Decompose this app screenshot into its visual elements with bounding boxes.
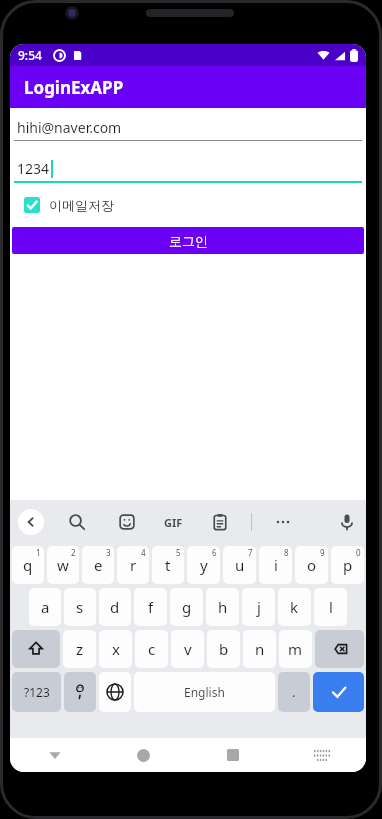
staticText: n	[255, 639, 265, 659]
staticText: 3	[106, 547, 111, 558]
button[interactable]: Shift	[12, 630, 60, 668]
staticText: hihi@naver.com	[17, 118, 122, 137]
button[interactable]: 로그인	[12, 227, 364, 254]
button[interactable]: Back	[18, 509, 44, 535]
button[interactable]: j	[242, 588, 275, 626]
staticText: a	[41, 597, 50, 617]
staticText: b	[219, 639, 229, 659]
button[interactable]: k	[278, 588, 311, 626]
button[interactable]: Voice input	[336, 511, 358, 533]
button[interactable]: d	[99, 588, 131, 626]
button[interactable]: Recent apps	[188, 738, 277, 772]
button[interactable]: hihi@naver.com	[14, 114, 362, 141]
staticText: 7	[248, 547, 253, 558]
staticText: v	[184, 639, 192, 659]
button[interactable]: i	[259, 546, 292, 584]
button[interactable]: p	[331, 546, 364, 584]
staticText: f	[148, 597, 154, 617]
button[interactable]: 이메일저장	[24, 197, 366, 213]
button[interactable]: z	[63, 630, 96, 668]
staticText: m	[288, 639, 303, 659]
button[interactable]: Enter	[313, 672, 364, 712]
button[interactable]: m	[279, 630, 312, 668]
staticText: 9	[320, 547, 325, 558]
button[interactable]: Search	[66, 511, 88, 533]
button[interactable]: ?123	[12, 672, 61, 712]
button[interactable]: o	[295, 546, 328, 584]
staticText: d	[110, 597, 120, 617]
button[interactable]: .	[278, 672, 310, 712]
button[interactable]: Backspace	[315, 630, 364, 668]
staticText: GIF	[164, 515, 183, 530]
button[interactable]: Change language	[99, 672, 131, 712]
button[interactable]: More options	[272, 511, 294, 533]
button[interactable]: v	[171, 630, 204, 668]
staticText: u	[235, 555, 245, 575]
button[interactable]: y	[187, 546, 220, 584]
button[interactable]: s	[64, 588, 96, 626]
staticText: 9:54	[18, 47, 42, 63]
staticText: 0	[356, 547, 361, 558]
button[interactable]: Stickers	[116, 511, 138, 533]
staticText: 1234	[17, 159, 50, 178]
staticText: p	[343, 555, 353, 575]
button[interactable]: t	[152, 546, 184, 584]
staticText: 5	[176, 547, 181, 558]
button[interactable]: l	[314, 588, 347, 626]
staticText: j	[257, 597, 261, 617]
button[interactable]: Keyboard active	[277, 738, 366, 772]
staticText: q	[23, 555, 33, 575]
button[interactable]: g	[170, 588, 203, 626]
staticText: h	[218, 597, 228, 617]
button[interactable]: Home	[99, 738, 188, 772]
staticText: l	[329, 597, 333, 617]
staticText: .	[292, 683, 296, 701]
staticText: 8	[284, 547, 289, 558]
button[interactable]: r	[117, 546, 149, 584]
staticText: LoginExAPP	[24, 76, 124, 99]
staticText: c	[148, 639, 156, 659]
staticText: w	[57, 555, 69, 575]
button[interactable]: f	[134, 588, 167, 626]
staticText: g	[182, 597, 192, 617]
button[interactable]: GIF	[164, 515, 183, 530]
staticText: r	[130, 555, 137, 575]
button[interactable]: u	[223, 546, 256, 584]
button[interactable]: c	[135, 630, 168, 668]
button[interactable]: h	[206, 588, 239, 626]
staticText: ?123	[24, 684, 50, 700]
staticText: z	[76, 639, 84, 659]
staticText: k	[290, 597, 299, 617]
staticText: 2	[71, 547, 76, 558]
staticText: 4	[141, 547, 146, 558]
staticText: e	[94, 555, 103, 575]
staticText: English	[184, 684, 225, 700]
button[interactable]: w	[47, 546, 79, 584]
staticText: x	[112, 639, 120, 659]
button[interactable]: Clipboard	[209, 511, 231, 533]
button[interactable]: x	[99, 630, 132, 668]
staticText: o	[307, 555, 317, 575]
button[interactable]: Emoji and comma	[64, 672, 96, 712]
staticText: t	[165, 555, 171, 575]
staticText: 로그인	[169, 233, 208, 249]
staticText: s	[76, 597, 84, 617]
staticText: 1	[36, 547, 41, 558]
staticText: 6	[212, 547, 217, 558]
button[interactable]: q	[12, 546, 44, 584]
button[interactable]: English	[134, 672, 275, 712]
button[interactable]: 1234	[14, 155, 362, 183]
button[interactable]: Back	[10, 738, 99, 772]
staticText: y	[200, 555, 208, 575]
button[interactable]: e	[82, 546, 114, 584]
staticText: i	[274, 555, 278, 575]
button[interactable]: a	[29, 588, 61, 626]
staticText: 이메일저장	[49, 197, 114, 213]
button[interactable]: b	[207, 630, 240, 668]
button[interactable]: n	[243, 630, 276, 668]
